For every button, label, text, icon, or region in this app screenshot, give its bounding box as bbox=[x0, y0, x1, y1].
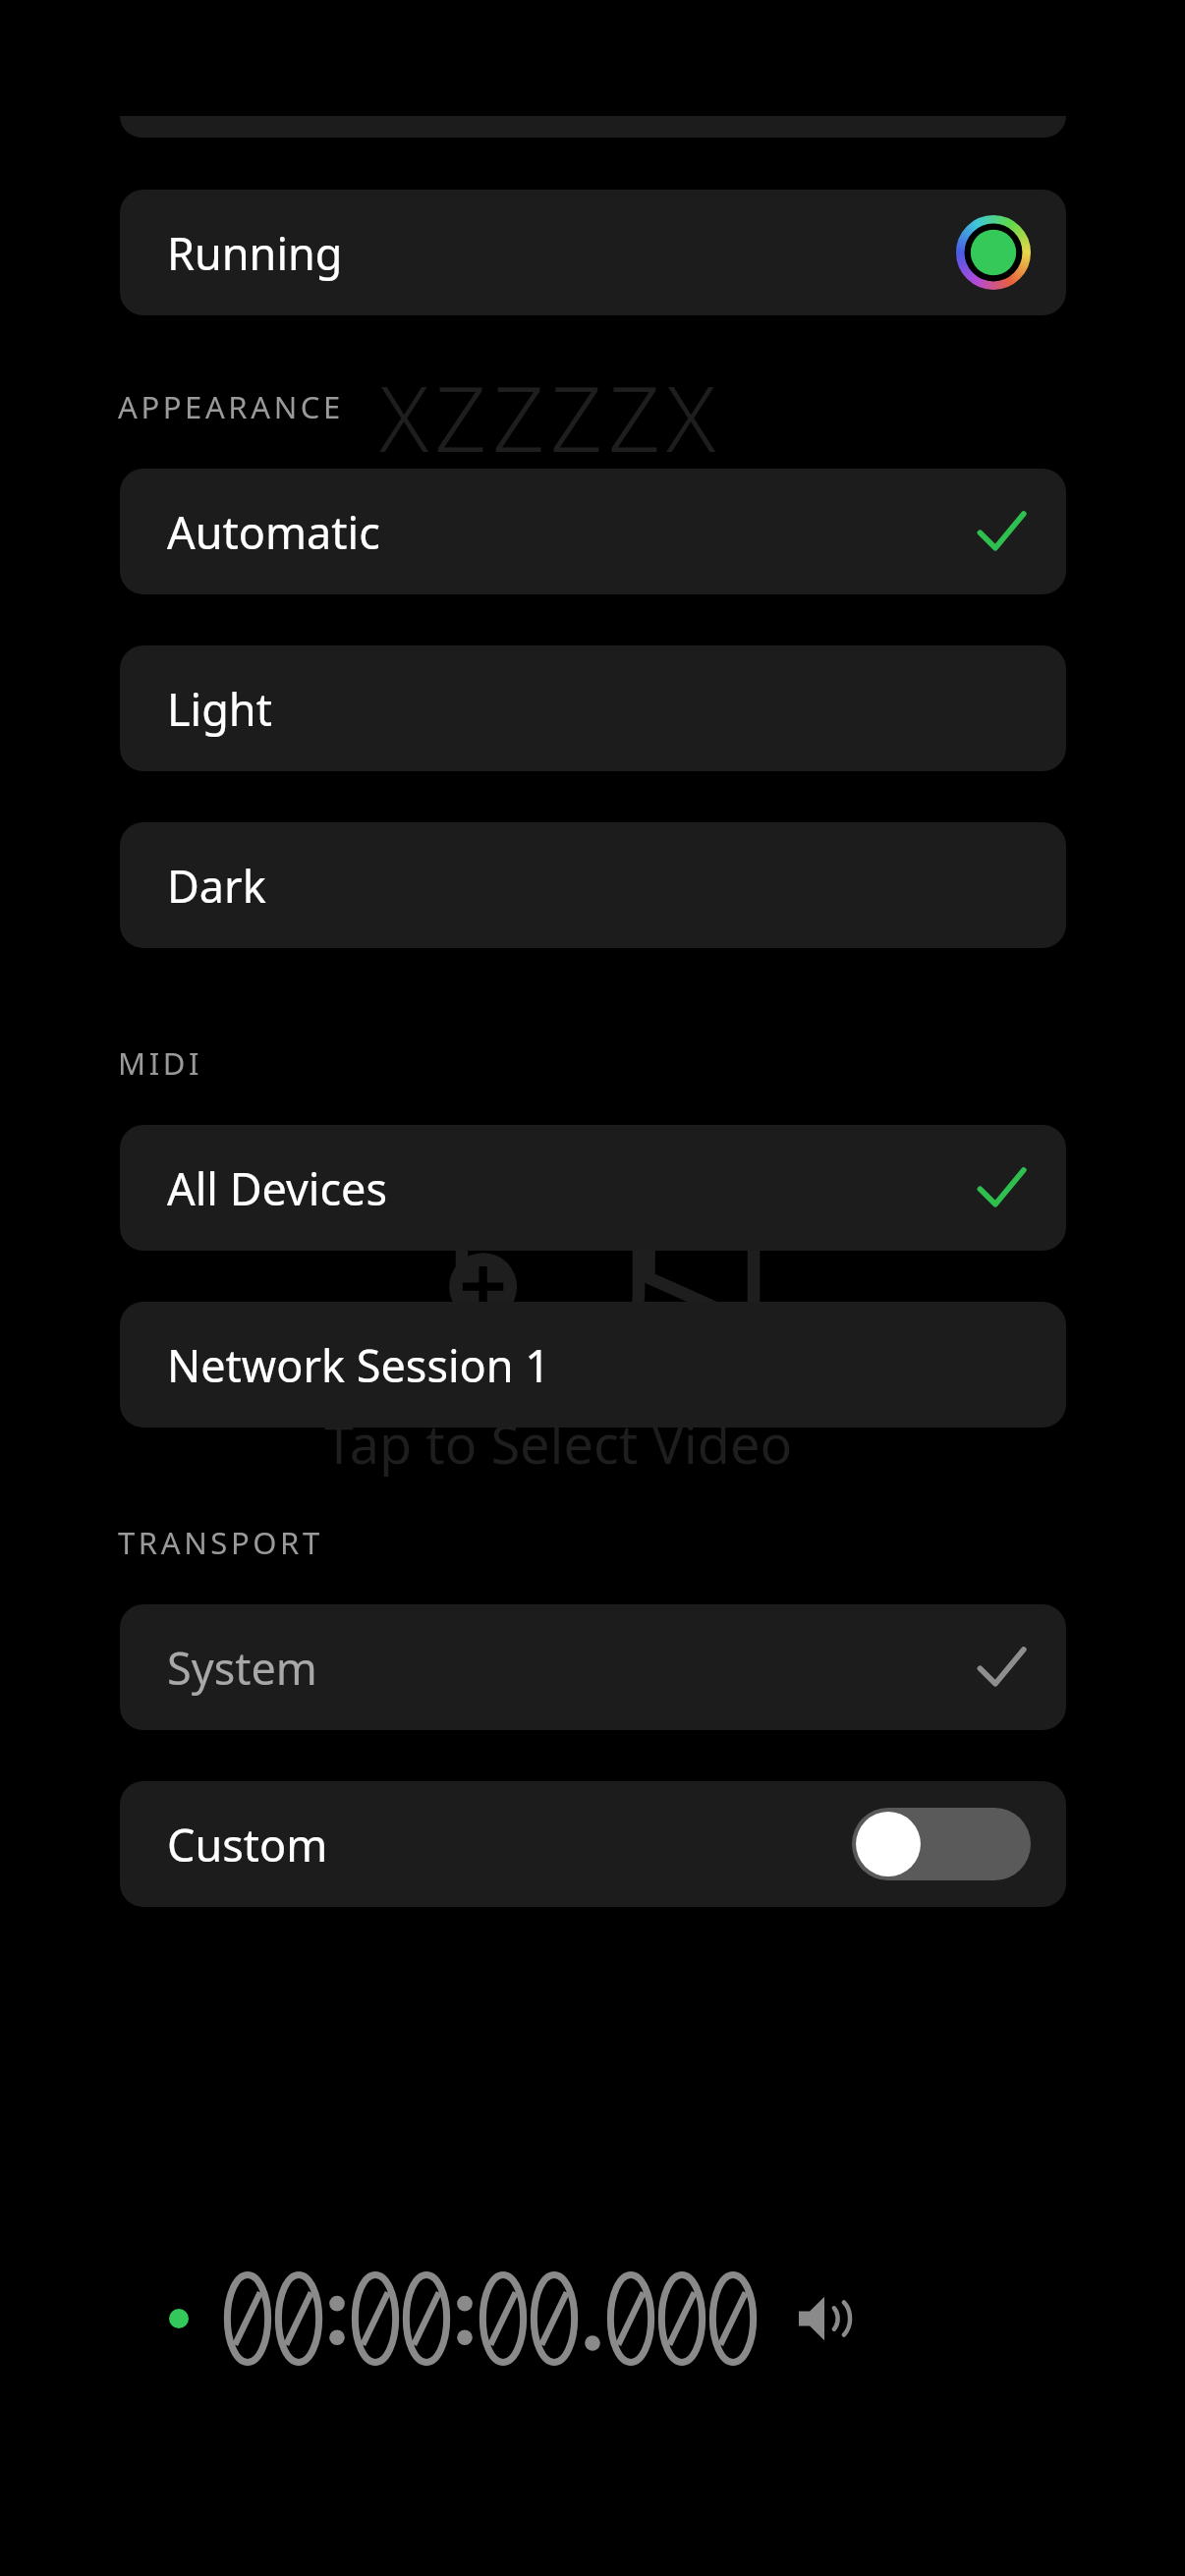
staticText: TRANSPORT bbox=[118, 1522, 323, 1563]
button[interactable]: System bbox=[120, 1604, 1066, 1730]
staticText: Tap to Select Video bbox=[324, 1407, 1012, 1480]
other: Colour bbox=[956, 215, 1031, 290]
button[interactable]: Volume bbox=[0, 2250, 1185, 2387]
staticText: Dark bbox=[167, 856, 1031, 916]
button[interactable]: Dark bbox=[120, 822, 1066, 948]
staticText: Network Session 1 bbox=[167, 1335, 1031, 1395]
staticText: XZZZZX bbox=[379, 356, 722, 478]
staticText: Automatic bbox=[167, 502, 972, 562]
other: Selected bbox=[972, 502, 1031, 561]
button[interactable]: Light bbox=[120, 645, 1066, 771]
staticText: System bbox=[167, 1638, 972, 1698]
button[interactable]: Automatic bbox=[120, 469, 1066, 594]
other: Volume bbox=[794, 2288, 855, 2349]
button[interactable]: All Devices bbox=[120, 1125, 1066, 1251]
staticText: Custom bbox=[167, 1815, 852, 1875]
staticText: MIDI bbox=[118, 1042, 203, 1084]
staticText: APPEARANCE bbox=[118, 386, 344, 427]
staticText: Light bbox=[167, 679, 1031, 739]
button[interactable]: Custom transport toggle bbox=[852, 1808, 1031, 1880]
other: Selected bbox=[972, 1638, 1031, 1697]
staticText: All Devices bbox=[167, 1158, 972, 1218]
button[interactable]: Custom bbox=[120, 1781, 1066, 1907]
button[interactable]: Network Session 1 bbox=[120, 1302, 1066, 1428]
staticText: Running bbox=[167, 223, 956, 283]
button[interactable]: Running bbox=[120, 190, 1066, 315]
other: Selected bbox=[972, 1158, 1031, 1217]
